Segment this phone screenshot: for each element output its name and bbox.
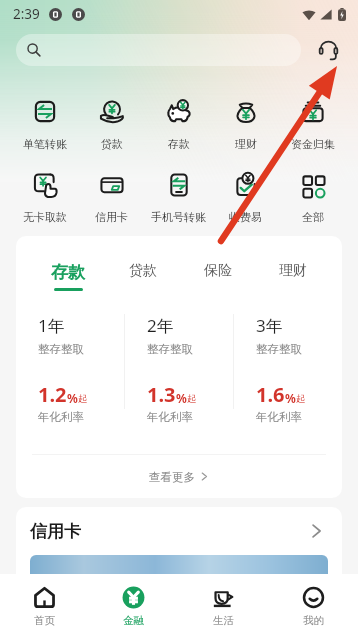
button[interactable]: 信用卡 (30, 507, 324, 555)
staticText: 我的 (303, 614, 324, 627)
button[interactable]: 生活 (178, 574, 268, 636)
staticText: 生活 (213, 614, 234, 627)
staticText: 1年 (38, 314, 65, 337)
staticText: 存款 (168, 137, 190, 151)
staticText: 资金归集 (291, 137, 335, 151)
staticText: 金融 (123, 614, 144, 627)
button[interactable]: Customer service (314, 36, 342, 64)
button[interactable]: 收费易 (212, 173, 279, 224)
button[interactable]: 信用卡 (78, 173, 145, 224)
staticText: 首页 (34, 614, 55, 627)
button[interactable]: 全部 (279, 173, 346, 224)
staticText: 整存整取 (256, 342, 302, 356)
staticText: 无卡取款 (23, 210, 67, 224)
staticText: 起 (187, 393, 197, 405)
staticText: 1.2 (38, 381, 67, 408)
staticText: 贷款 (101, 137, 123, 151)
button[interactable]: 存款 (31, 262, 105, 291)
staticText: 单笔转账 (23, 137, 67, 151)
button[interactable]: 单笔转账 (12, 100, 78, 151)
staticText: % (176, 390, 187, 406)
button[interactable]: 贷款 (78, 100, 145, 151)
staticText: 存款 (51, 262, 85, 283)
staticText: 3年 (256, 314, 283, 337)
staticText: 整存整取 (147, 342, 193, 356)
staticText: 手机号转账 (151, 210, 206, 224)
staticText: 年化利率 (38, 410, 84, 424)
button[interactable]: 首页 (0, 574, 89, 636)
staticText: % (285, 390, 296, 406)
staticText: 1.3 (147, 381, 176, 408)
staticText: 起 (78, 393, 88, 405)
button[interactable]: 无卡取款 (12, 173, 78, 224)
staticText: 理财 (235, 137, 257, 151)
staticText: 理财 (279, 262, 307, 280)
button[interactable]: 存款 (145, 100, 212, 151)
staticText: 信用卡 (95, 210, 128, 224)
button[interactable]: 手机号转账 (145, 173, 212, 224)
staticText: 2年 (147, 314, 174, 337)
staticText: 保险 (204, 262, 232, 280)
staticText: 查看更多 (149, 470, 195, 484)
staticText: 年化利率 (147, 410, 193, 424)
staticText: % (67, 390, 78, 406)
staticText: 信用卡 (30, 521, 81, 542)
staticText: 贷款 (129, 262, 157, 280)
staticText: 1.6 (256, 381, 285, 408)
staticText: 起 (296, 393, 306, 405)
staticText: 收费易 (229, 210, 262, 224)
staticText: 2:39 (13, 5, 40, 23)
button[interactable]: 理财 (212, 100, 279, 151)
button[interactable]: 金融 (89, 574, 178, 636)
button[interactable]: 我的 (268, 574, 358, 636)
button[interactable]: 保险 (180, 262, 255, 288)
button[interactable]: 理财 (255, 262, 330, 288)
staticText: 整存整取 (38, 342, 84, 356)
staticText: 全部 (302, 210, 324, 224)
button[interactable]: 贷款 (105, 262, 180, 288)
button[interactable]: Search (16, 34, 301, 66)
button[interactable]: 查看更多 (16, 455, 342, 498)
staticText: 年化利率 (256, 410, 302, 424)
button[interactable]: 资金归集 (279, 100, 346, 151)
